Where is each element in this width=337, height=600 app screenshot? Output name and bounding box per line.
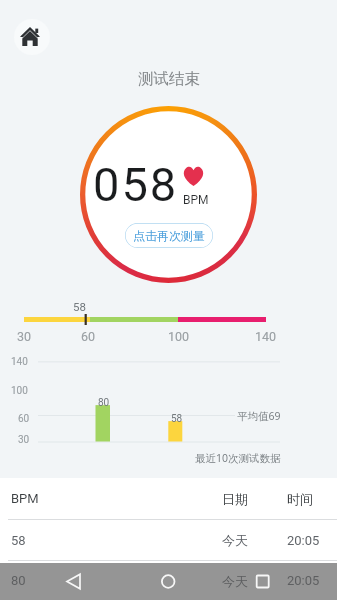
staticText: 80 (11, 573, 26, 588)
staticText: 100 (168, 329, 190, 344)
staticText: 58 (11, 533, 26, 548)
staticText: 测试结束 (138, 69, 200, 89)
staticText: 点击再次测量 (133, 228, 205, 243)
staticText: 今天 (222, 532, 248, 548)
button[interactable]: 58 (0, 520, 337, 560)
button[interactable]: 80 (0, 561, 337, 600)
staticText: 58 (73, 300, 86, 313)
button[interactable]: Back (55, 563, 92, 600)
staticText: 140 (255, 329, 277, 344)
button[interactable]: Recents (244, 563, 281, 600)
staticText: 最近10次测试数据 (195, 451, 281, 465)
staticText: 平均值69 (237, 409, 281, 423)
staticText: 20:05 (287, 573, 320, 588)
staticText: 时间 (287, 491, 313, 507)
staticText: BPM (11, 491, 39, 506)
staticText: 30 (18, 434, 30, 446)
staticText: 60 (18, 413, 30, 425)
staticText: 20:05 (287, 533, 320, 548)
staticText: 058 (93, 157, 179, 212)
staticText: 今天 (222, 573, 248, 589)
button[interactable]: Home (150, 563, 187, 600)
button[interactable]: BPM (0, 478, 337, 519)
staticText: 30 (17, 329, 32, 344)
staticText: 58 (171, 413, 183, 425)
staticText: 日期 (222, 491, 248, 507)
button[interactable]: 点击再次测量 (125, 223, 213, 248)
button[interactable]: Home (14, 19, 50, 55)
staticText: 100 (11, 385, 28, 397)
staticText: 60 (81, 329, 96, 344)
staticText: 140 (11, 356, 28, 368)
staticText: 80 (98, 397, 110, 409)
staticText: BPM (183, 193, 209, 207)
